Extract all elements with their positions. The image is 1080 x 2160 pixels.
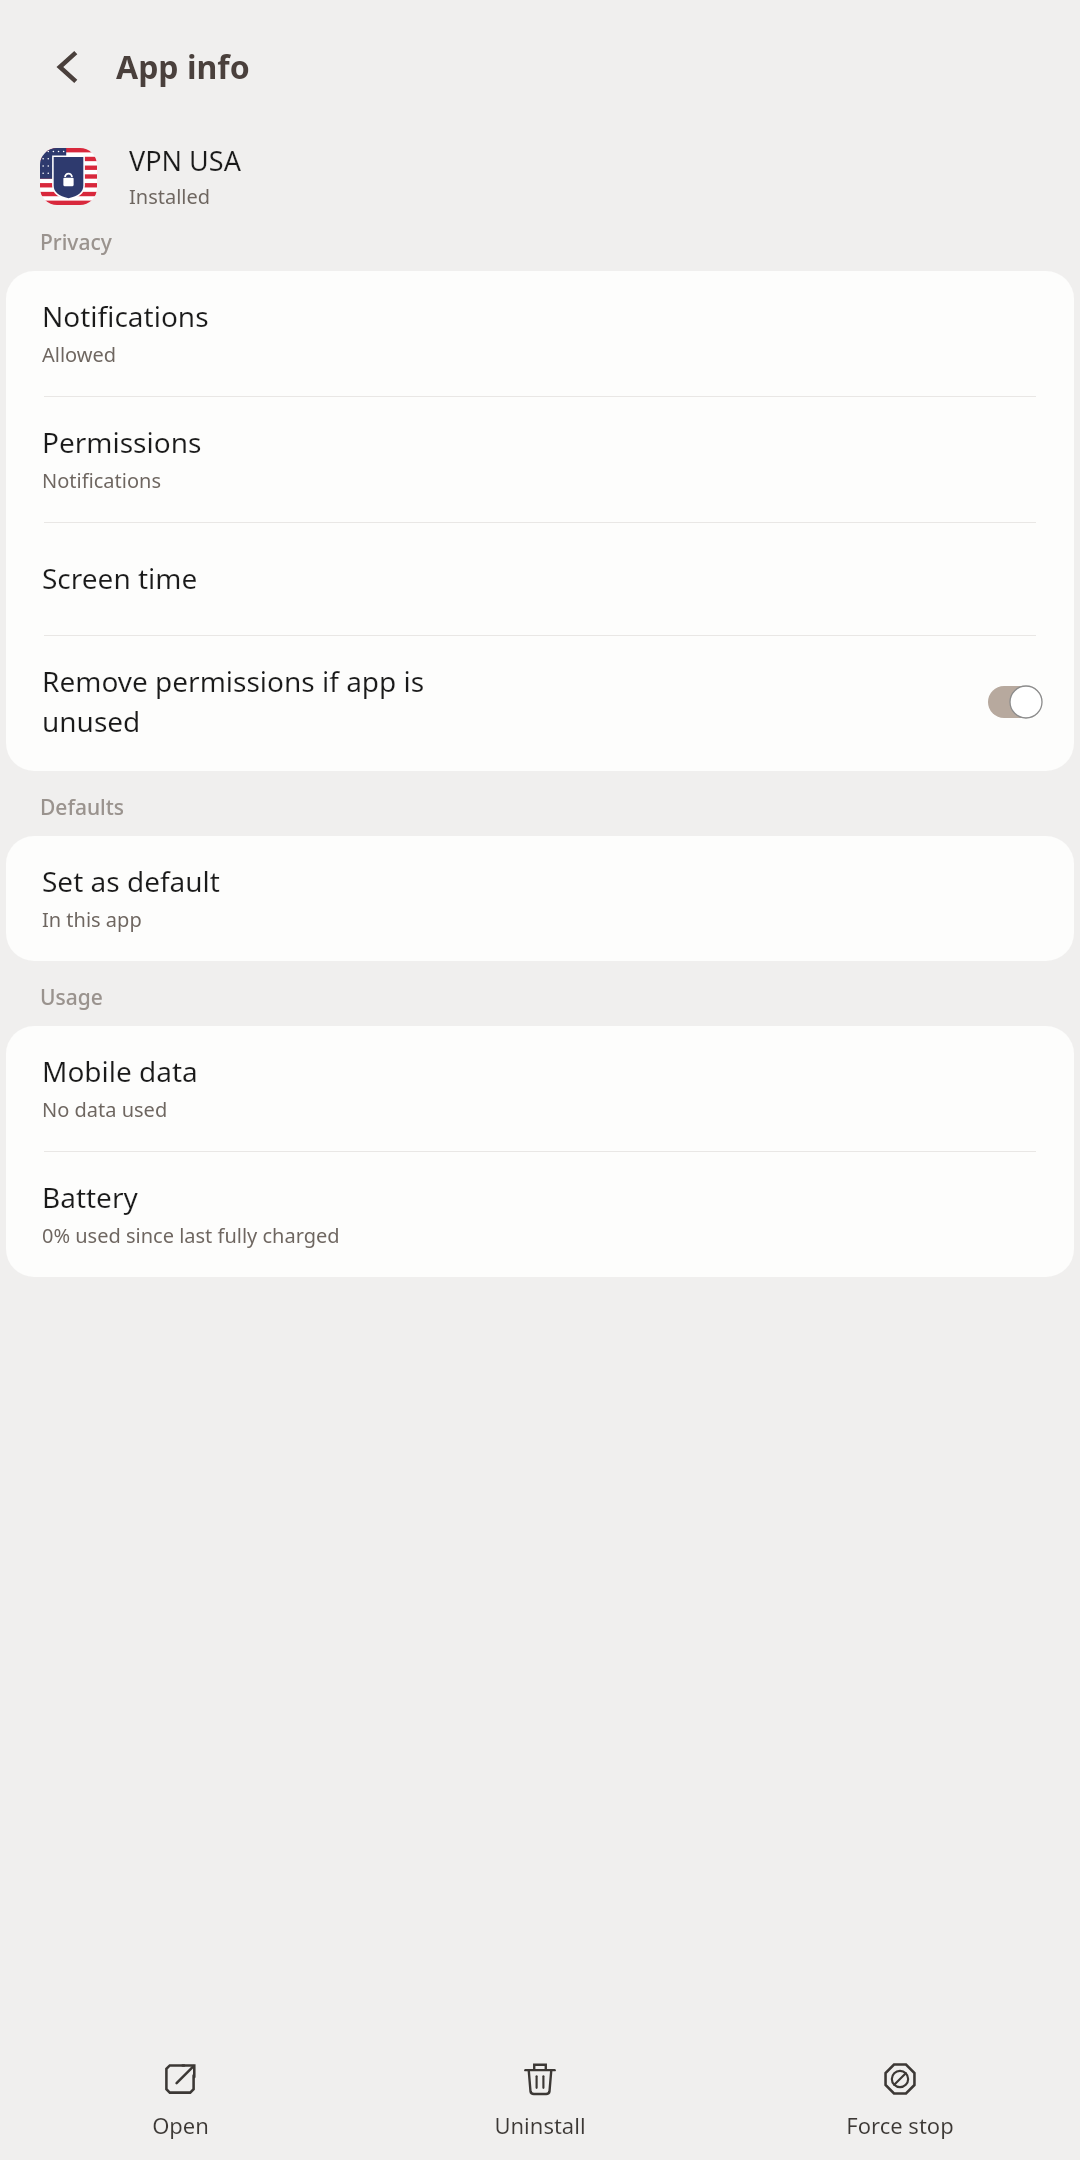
button[interactable]: Open (0, 2042, 360, 2160)
button[interactable]: Screen time (6, 523, 1074, 635)
staticText: Notifications (42, 297, 209, 335)
staticText: Permissions (42, 423, 202, 461)
staticText: In this app (42, 906, 142, 933)
staticText: Set as default (42, 862, 220, 900)
button[interactable]: Set as default (6, 836, 1074, 961)
staticText: Uninstall (494, 2110, 586, 2140)
staticText: Privacy (40, 228, 112, 257)
staticText: No data used (42, 1096, 168, 1123)
other: Toggle (988, 686, 1042, 718)
staticText: Defaults (40, 793, 124, 822)
button[interactable]: Force stop (720, 2042, 1080, 2160)
button[interactable]: Back (40, 39, 96, 95)
staticText: Mobile data (42, 1052, 198, 1090)
staticText: Open (152, 2110, 209, 2140)
staticText: App info (116, 45, 250, 89)
staticText: Force stop (846, 2110, 954, 2140)
button[interactable]: Permissions (6, 397, 1074, 522)
staticText: 0% used since last fully charged (42, 1222, 340, 1249)
button[interactable]: Battery (6, 1152, 1074, 1277)
button[interactable]: Mobile data (6, 1026, 1074, 1151)
button[interactable]: Uninstall (360, 2042, 720, 2160)
staticText: Notifications (42, 467, 161, 494)
button[interactable]: Remove permissions if app is unused (6, 636, 1074, 771)
staticText: Battery (42, 1178, 138, 1216)
staticText: Remove permissions if app is unused (42, 662, 976, 741)
staticText: Usage (40, 983, 103, 1012)
staticText: Installed (129, 183, 211, 210)
button[interactable]: Notifications (6, 271, 1074, 396)
staticText: Screen time (42, 559, 198, 597)
staticText: VPN USA (129, 142, 241, 179)
staticText: Allowed (42, 341, 117, 368)
